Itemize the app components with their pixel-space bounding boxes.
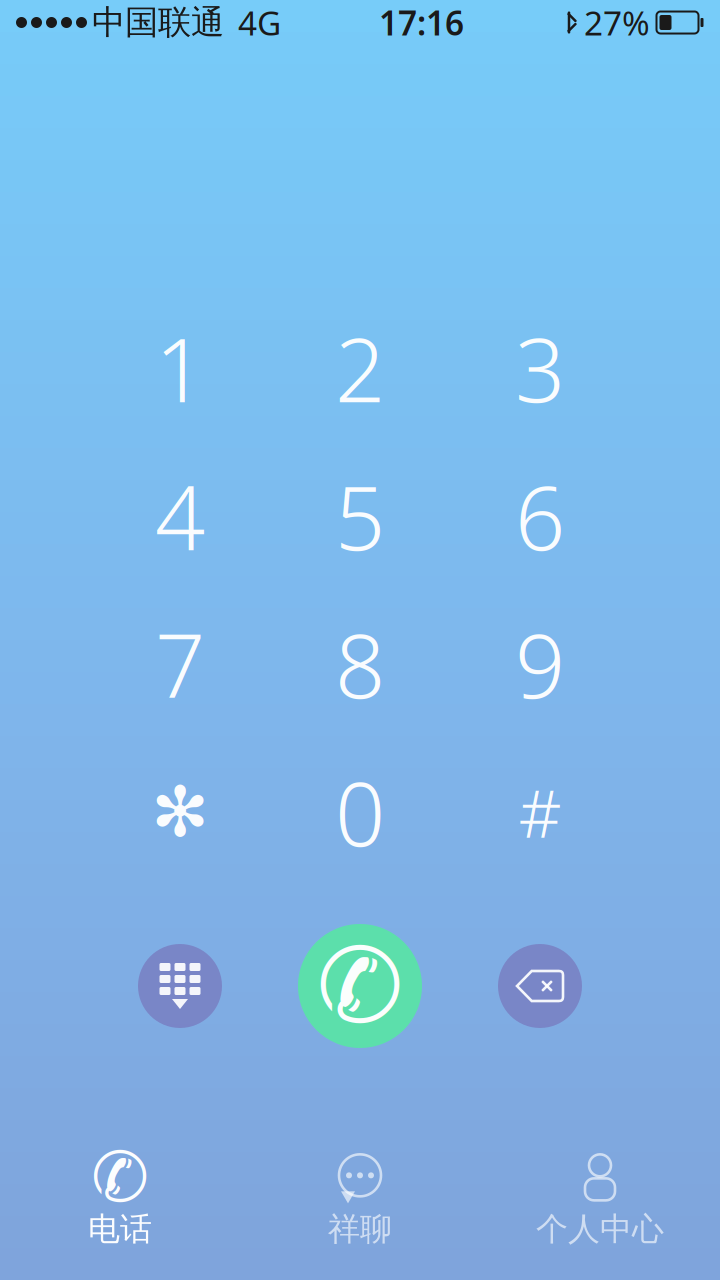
staticText: 7 — [155, 606, 205, 722]
button[interactable]: # — [450, 738, 630, 886]
button[interactable]: 8 — [270, 590, 450, 738]
staticText: # — [518, 768, 561, 856]
staticText: 3 — [515, 310, 565, 426]
staticText: ✆ — [316, 927, 403, 1045]
staticText: 4G — [238, 0, 281, 45]
staticText: 8 — [335, 606, 385, 722]
button[interactable]: 祥聊 — [240, 1140, 480, 1260]
button[interactable]: 4 — [90, 442, 270, 590]
staticText: 17:16 — [379, 0, 464, 45]
button[interactable]: Hide keypad — [90, 924, 270, 1048]
button[interactable]: 1 — [90, 294, 270, 442]
staticText: 祥聊 — [328, 1209, 392, 1249]
staticText: 个人中心 — [536, 1209, 664, 1249]
staticText: 4 — [155, 458, 205, 574]
button[interactable]: ✆ — [0, 1140, 240, 1260]
staticText: 5 — [335, 458, 385, 574]
staticText: ✆ — [91, 1138, 149, 1217]
staticText: 0 — [335, 754, 385, 870]
button[interactable]: 9 — [450, 590, 630, 738]
button[interactable]: 0 — [270, 738, 450, 886]
staticText: 6 — [515, 458, 565, 574]
button[interactable]: Delete — [450, 924, 630, 1048]
staticText: 中国联通 — [92, 2, 224, 43]
button[interactable]: 2 — [270, 294, 450, 442]
button[interactable]: 6 — [450, 442, 630, 590]
button[interactable]: 7 — [90, 590, 270, 738]
button[interactable]: 5 — [270, 442, 450, 590]
staticText: 电话 — [88, 1209, 152, 1249]
staticText: 27% — [584, 0, 650, 45]
staticText: 1 — [155, 310, 205, 426]
button[interactable]: Call — [270, 924, 450, 1048]
button[interactable]: 个人中心 — [480, 1140, 720, 1260]
button[interactable]: ✻ — [90, 738, 270, 886]
button[interactable]: 3 — [450, 294, 630, 442]
staticText: 2 — [335, 310, 385, 426]
staticText: ✻ — [151, 773, 209, 851]
staticText: 9 — [515, 606, 565, 722]
